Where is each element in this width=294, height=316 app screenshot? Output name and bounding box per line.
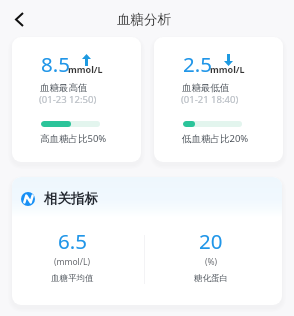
button[interactable]: 相关指标 (21, 190, 98, 207)
staticText: mmol/L (210, 63, 245, 75)
staticText: 6.5 (58, 227, 87, 255)
button[interactable]: 8.5 (12, 37, 141, 162)
staticText: (%) (205, 256, 218, 268)
staticText: (mmol/L) (54, 256, 90, 268)
staticText: 2.5 (183, 50, 212, 78)
staticText: 高血糖占比50% (40, 132, 107, 145)
staticText: 相关指标 (44, 190, 98, 207)
staticText: 血糖最高值 (40, 82, 88, 94)
staticText: (01-21 18:40) (181, 93, 239, 106)
staticText: 糖化蛋白 (194, 273, 228, 284)
staticText: 低血糖占比20% (182, 132, 249, 145)
staticText: 血糖平均值 (51, 273, 94, 284)
button[interactable]: 20 (161, 227, 261, 284)
button[interactable]: 2.5 (154, 37, 283, 162)
button[interactable]: Back (7, 7, 31, 31)
button[interactable]: 6.5 (22, 227, 122, 284)
staticText: 血糖分析 (117, 11, 171, 28)
staticText: 8.5 (41, 50, 70, 78)
staticText: mmol/L (68, 63, 103, 75)
staticText: 血糖最低值 (182, 82, 230, 94)
staticText: 20 (199, 227, 223, 255)
staticText: (01-23 12:50) (39, 93, 97, 106)
